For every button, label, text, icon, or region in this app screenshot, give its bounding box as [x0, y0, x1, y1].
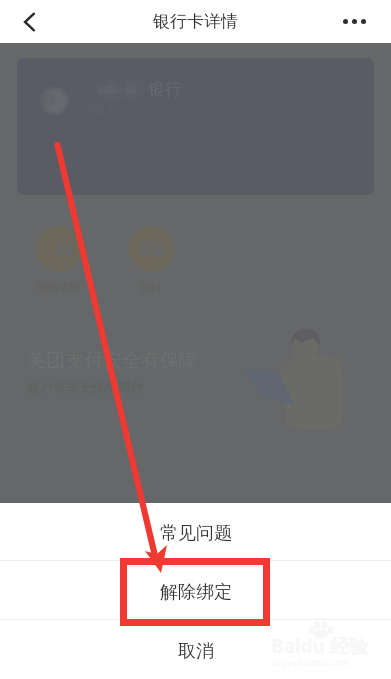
staticText: 账户可享无忧保障付: [27, 379, 144, 395]
button[interactable]: Back: [5, 0, 49, 43]
staticText: 常见问题: [160, 522, 232, 545]
staticText: 解除绑定: [160, 581, 232, 604]
button[interactable]: 取消: [0, 620, 391, 679]
staticText: 银行: [148, 79, 182, 100]
staticText: Baidu 经验: [271, 633, 368, 659]
button[interactable]: 限额查询: [36, 226, 82, 294]
staticText: 取消: [178, 640, 214, 663]
staticText: 美团支付安全有保障: [27, 349, 198, 373]
button[interactable]: 解除绑定: [0, 561, 391, 619]
button[interactable]: More options: [331, 0, 377, 43]
button[interactable]: 银行: [17, 58, 374, 195]
staticText: 银行卡详情: [153, 11, 238, 32]
button[interactable]: 常见问题: [0, 503, 391, 560]
button[interactable]: 闪付: [128, 226, 174, 294]
